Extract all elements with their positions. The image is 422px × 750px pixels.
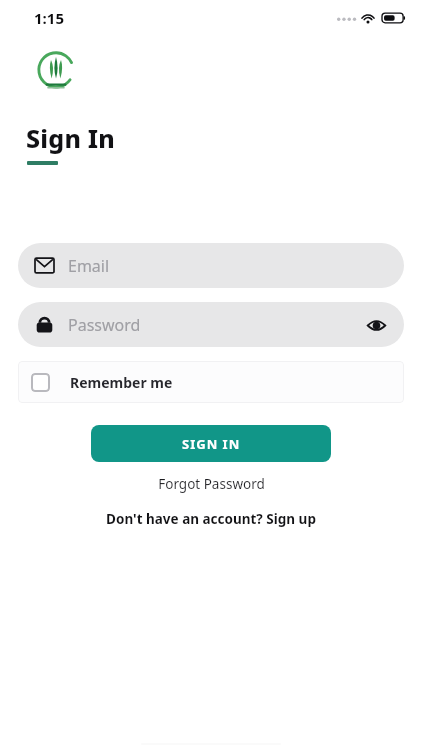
button[interactable]: Remember me [18, 361, 404, 403]
button[interactable]: Don't have an account? Sign up [0, 510, 422, 528]
staticText: Forgot Password [158, 475, 265, 493]
staticText: Remember me [70, 373, 173, 392]
other: Password [35, 315, 54, 334]
button[interactable]: Forgot Password [0, 475, 422, 493]
button[interactable]: SIGN IN [91, 425, 331, 462]
staticText: Email [68, 255, 110, 277]
button[interactable]: Password [18, 302, 404, 347]
staticText: Don't have an account? Sign up [106, 510, 316, 528]
staticText: Sign In [26, 121, 115, 155]
button[interactable]: Email [18, 243, 404, 288]
staticText: SIGN IN [182, 435, 241, 453]
button[interactable]: Show password [365, 314, 387, 336]
other: Email [35, 256, 54, 275]
staticText: 1:15 [34, 8, 64, 28]
staticText: Password [68, 314, 141, 336]
